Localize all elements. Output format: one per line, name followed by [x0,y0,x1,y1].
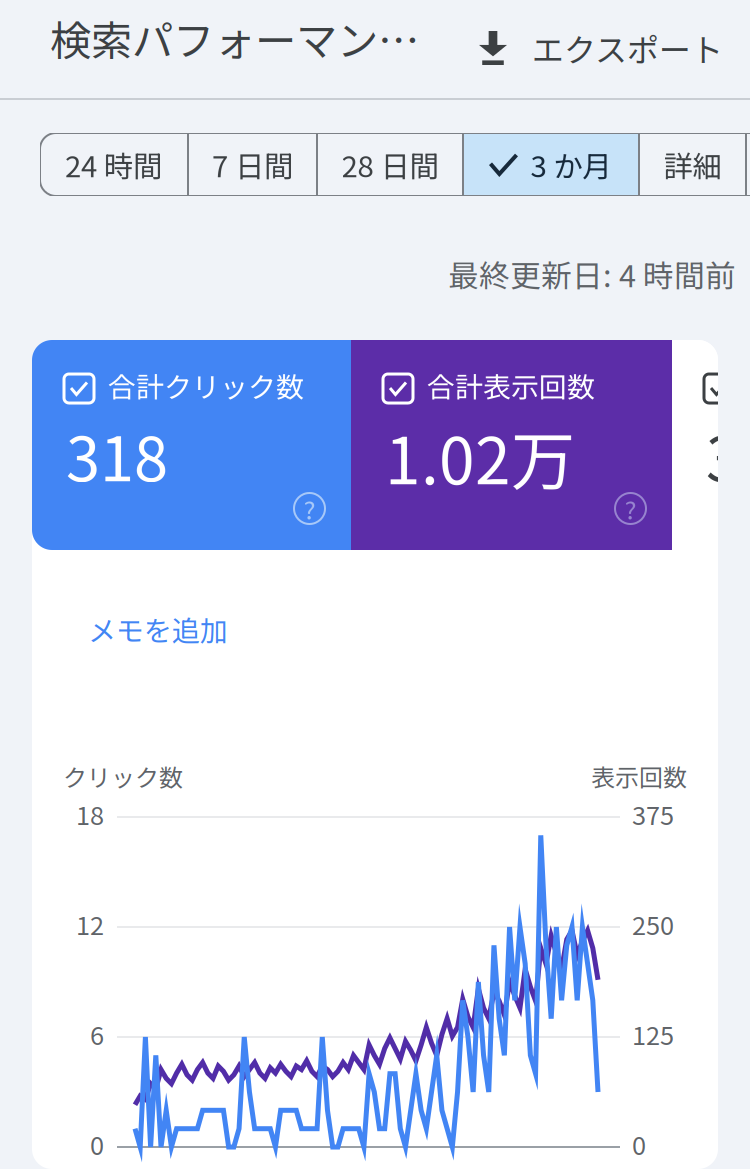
button[interactable]: 合計エンゲージメント [672,340,750,550]
staticText: 検索パフォーマン… [50,8,419,68]
staticText: ? [303,490,315,527]
staticText: メモを追加 [88,609,228,649]
button[interactable]: 詳細 [640,133,745,196]
staticText: エクスポート [532,25,723,71]
staticText: 6 [90,1016,104,1052]
staticText: 3 か月 [530,143,611,186]
button[interactable]: 合計クリック数 [32,340,351,550]
staticText: 1.02万 [385,410,575,503]
staticText: 375 [632,796,674,832]
staticText: 28 日間 [341,143,438,186]
staticText: 合計表示回数 [427,365,595,405]
button[interactable]: 24 時間 [40,133,187,196]
button[interactable]: エクスポート [479,15,739,81]
staticText: 0 [632,1126,646,1162]
button[interactable]: メモを追加 [88,603,268,655]
staticText: 12 [76,906,104,942]
staticText: 表示回数 [591,759,687,793]
button[interactable]: 3 か月 [464,133,638,196]
staticText: 250 [632,906,674,942]
staticText: 詳細 [663,143,721,186]
button[interactable]: 7 日間 [189,133,316,196]
staticText: ? [624,490,636,527]
staticText: 18 [76,796,104,832]
button[interactable]: 合計表示回数 [351,340,672,550]
staticText: 0 [90,1126,104,1162]
staticText: 3.1 [706,410,750,499]
button[interactable]: 28 日間 [318,133,462,196]
staticText: 318 [66,410,168,499]
staticText: 7 日間 [212,143,293,186]
staticText: 125 [632,1016,674,1052]
staticText: クリック数 [63,759,183,794]
staticText: 24 時間 [65,143,162,186]
button[interactable]: 比較 [747,133,750,196]
staticText: 合計クリック数 [108,365,304,405]
staticText: 最終更新日: 4 時間前 [448,252,736,296]
